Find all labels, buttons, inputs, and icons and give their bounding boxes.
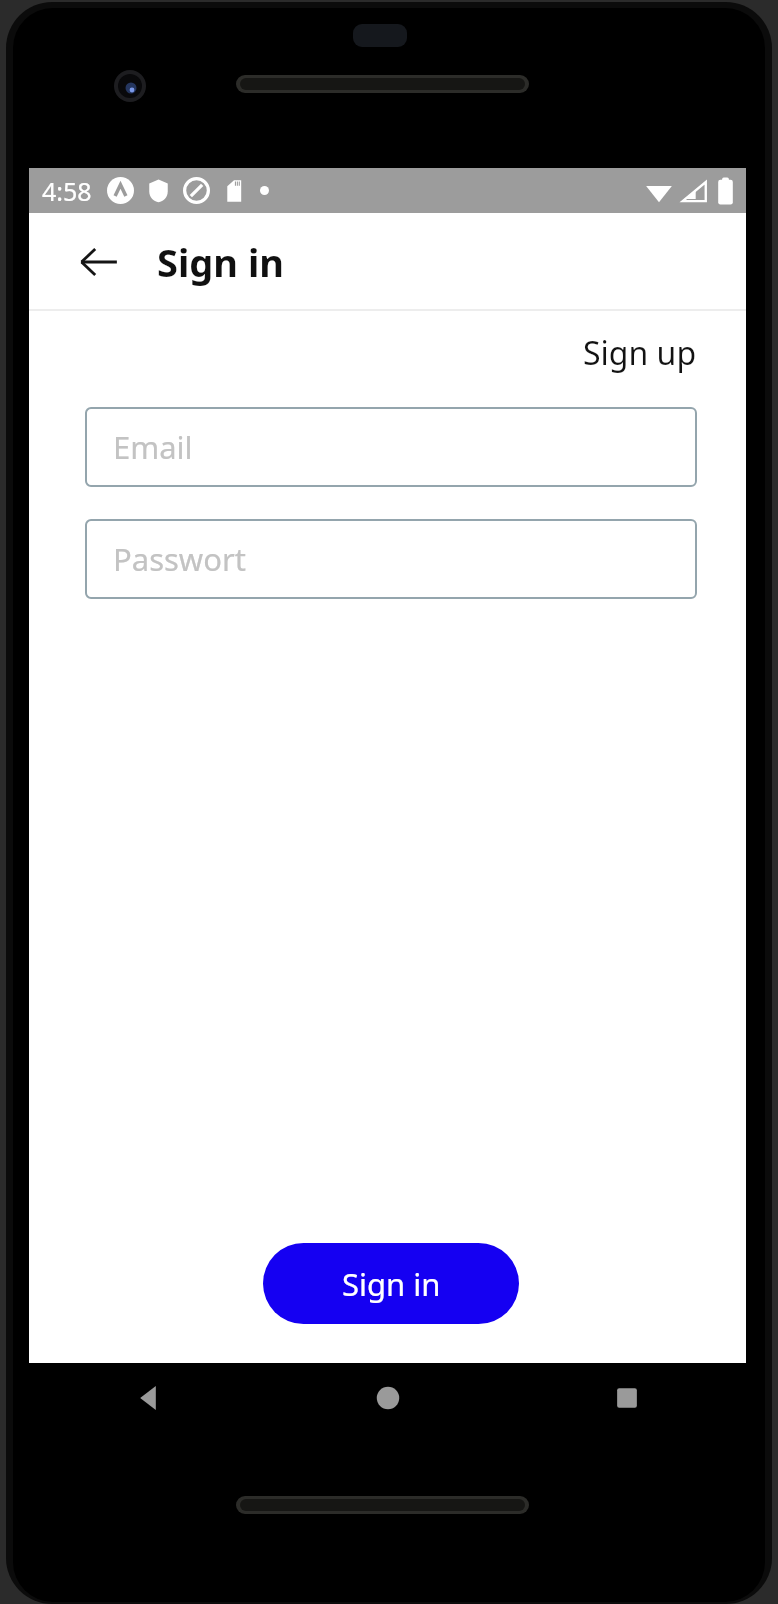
button[interactable]: Sign up xyxy=(583,331,697,375)
staticText: Passwort xyxy=(113,538,246,580)
button[interactable]: Recent apps xyxy=(507,1363,746,1433)
button[interactable]: Email xyxy=(85,407,697,487)
button[interactable]: Home xyxy=(268,1363,507,1433)
staticText: Sign up xyxy=(583,331,697,375)
button[interactable]: Sign in xyxy=(263,1243,519,1324)
button[interactable]: Navigate up xyxy=(76,239,122,285)
staticText: 4:58 xyxy=(42,174,92,208)
button[interactable]: Passwort xyxy=(85,519,697,599)
staticText: Sign in xyxy=(157,236,284,288)
button[interactable]: Back xyxy=(29,1363,268,1433)
staticText: Email xyxy=(113,426,193,468)
staticText: Sign in xyxy=(342,1263,441,1305)
